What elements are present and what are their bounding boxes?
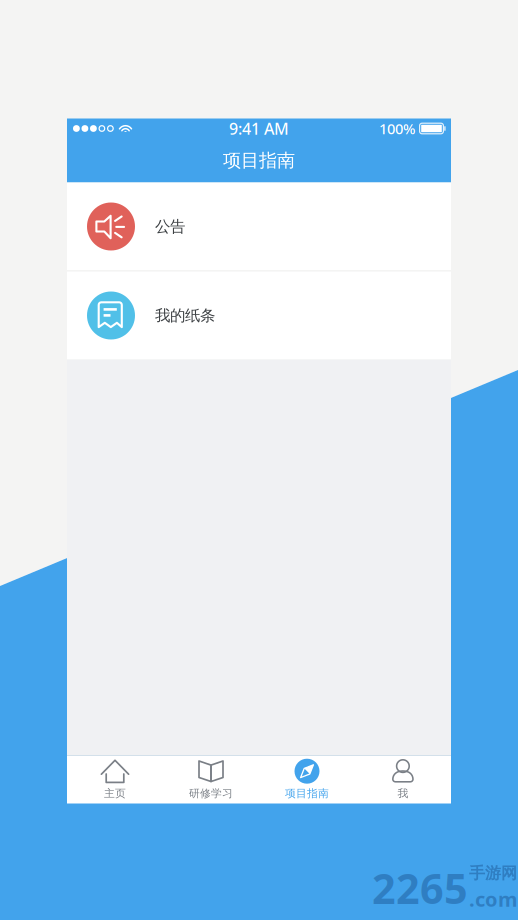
- staticText: 2265: [372, 860, 468, 916]
- staticText: 项目指南: [223, 149, 295, 172]
- button[interactable]: 我的纸条: [67, 271, 451, 359]
- button[interactable]: 项目指南: [259, 756, 355, 803]
- staticText: 主页: [104, 787, 126, 800]
- staticText: 项目指南: [285, 787, 329, 800]
- staticText: 我的纸条: [155, 306, 215, 325]
- button[interactable]: 研修学习: [163, 756, 259, 803]
- button[interactable]: 主页: [67, 756, 163, 803]
- button[interactable]: 我: [355, 756, 451, 803]
- staticText: 研修学习: [189, 787, 233, 800]
- staticText: 9:41 AM: [229, 118, 289, 139]
- staticText: 公告: [155, 217, 185, 236]
- button[interactable]: 公告: [67, 182, 451, 270]
- staticText: 100%: [379, 119, 415, 138]
- staticText: .com: [469, 885, 518, 912]
- staticText: 我: [397, 787, 408, 800]
- staticText: 手游网: [469, 863, 517, 883]
